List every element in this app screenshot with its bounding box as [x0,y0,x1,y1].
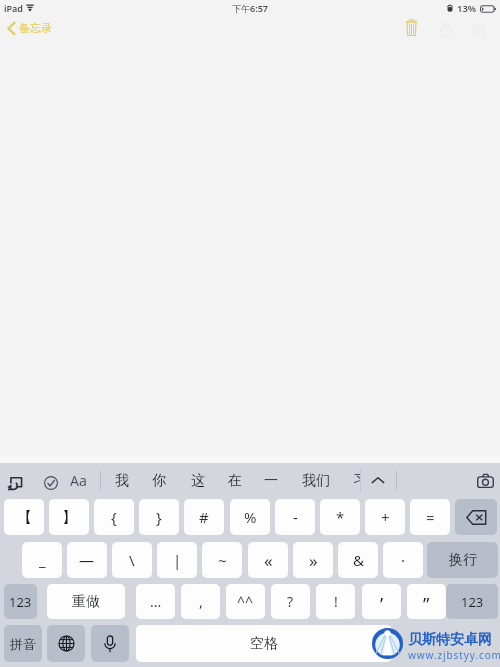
button[interactable]: 一 [256,467,286,494]
staticText: ~ [218,550,227,570]
staticText: 【 [17,508,32,527]
staticText: ^^ [237,592,254,611]
staticText: & [353,550,364,570]
staticText: 备忘录 [19,21,52,35]
button[interactable]: Aa [70,470,90,490]
button[interactable]: 我们 [294,467,338,494]
button[interactable]: ~ [202,542,242,578]
staticText: 拼音 [10,636,36,652]
staticText: « [264,549,273,572]
button[interactable]: , [181,584,220,619]
staticText: 这 [191,472,205,490]
button[interactable]: Camera [477,473,494,488]
button[interactable]: 123 [446,584,498,619]
staticText: 我们 [302,472,330,490]
staticText: ! [334,592,338,611]
staticText: ” [423,592,430,617]
button[interactable]: { [94,499,134,535]
staticText: } [156,507,162,527]
button[interactable]: - [275,499,315,535]
button[interactable]: ^^ [226,584,265,619]
button[interactable]: ! [316,584,355,619]
button[interactable]: = [410,499,450,535]
staticText: · [401,550,406,570]
button[interactable]: & [338,542,378,578]
staticText: iPad [4,2,23,14]
button[interactable]: ” [407,584,446,619]
staticText: ’ [380,592,384,617]
button[interactable]: ... [136,584,175,619]
staticText: ... [150,592,162,611]
button[interactable]: 拼音 [4,625,42,662]
staticText: - [293,507,298,527]
staticText: 重做 [72,593,100,611]
staticText: 贝斯特安卓网 [408,631,492,649]
staticText: 习 [353,471,360,489]
button[interactable]: Expand candidates [366,469,390,491]
staticText: 123 [9,593,32,611]
staticText: = [426,507,435,527]
button[interactable]: ’ [362,584,401,619]
button[interactable]: Backspace [455,499,497,535]
staticText: 你 [152,472,166,490]
staticText: — [79,550,95,570]
button[interactable]: 】 [49,499,89,535]
staticText: + [381,507,390,527]
staticText: 】 [62,508,77,527]
button[interactable]: _ [22,542,62,578]
button[interactable]: | [157,542,197,578]
button[interactable]: 空格 [136,625,392,662]
button[interactable]: % [230,499,270,535]
button[interactable]: 123 [4,584,37,619]
button[interactable]: « [248,542,288,578]
button[interactable]: Delete note [398,14,425,42]
staticText: # [199,507,209,527]
button[interactable]: 这 [183,467,213,494]
staticText: * [336,507,345,527]
staticText: 在 [228,472,242,490]
button[interactable]: Switch keyboard [47,625,85,662]
staticText: www.zjbstyy.com [408,648,500,662]
staticText: _ [39,550,46,570]
staticText: » [309,549,318,572]
button[interactable]: * [320,499,360,535]
staticText: 123 [461,593,484,611]
button[interactable]: » [293,542,333,578]
staticText: ? [287,592,294,611]
staticText: \ [129,550,135,570]
button[interactable]: } [139,499,179,535]
button[interactable]: + [365,499,405,535]
button[interactable]: Dictation [91,625,129,662]
staticText: , [199,592,203,611]
button[interactable]: 你 [144,467,174,494]
staticText: { [111,507,117,527]
staticText: 空格 [250,635,278,653]
button[interactable]: — [67,542,107,578]
button[interactable]: 在 [220,467,250,494]
button[interactable]: # [184,499,224,535]
staticText: 13% [457,2,477,15]
staticText: 一 [264,472,278,490]
button[interactable]: 重做 [47,584,125,619]
staticText: | [173,550,182,570]
button[interactable]: 换行 [427,542,498,578]
staticText: 我 [115,472,129,490]
button[interactable]: \ [112,542,152,578]
button[interactable]: 我 [107,467,137,494]
staticText: % [244,507,257,527]
staticText: 下午6:57 [232,2,268,14]
staticText: 换行 [449,551,477,569]
button[interactable]: 备忘录 [7,21,52,35]
button[interactable]: · [383,542,423,578]
staticText: Aa [70,471,87,490]
button[interactable]: 【 [4,499,44,535]
button[interactable]: Undo [7,475,22,490]
button[interactable]: Confirm [44,476,58,490]
button[interactable]: ? [271,584,310,619]
